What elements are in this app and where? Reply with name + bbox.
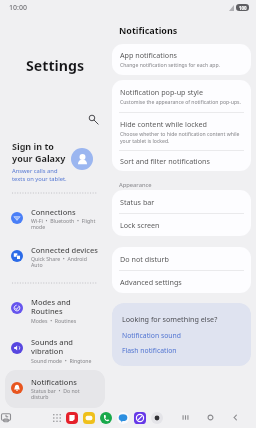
button[interactable]: Status bar xyxy=(112,190,251,213)
staticText: 100 xyxy=(239,5,247,11)
staticText: Advanced settings xyxy=(120,277,182,287)
staticText: Modes • Routines xyxy=(31,317,77,324)
button[interactable]: App 3 xyxy=(117,412,129,424)
staticText: Connected devices xyxy=(31,245,98,255)
staticText: Connections xyxy=(31,207,76,217)
button[interactable]: Hide content while locked xyxy=(112,113,251,150)
staticText: Settings xyxy=(26,56,85,75)
staticText: Status bar • Do not disturb xyxy=(31,387,80,401)
button[interactable]: Connections xyxy=(5,200,105,238)
button[interactable]: Sounds and vibration xyxy=(5,330,105,371)
button[interactable]: App 0 xyxy=(66,412,78,424)
button[interactable]: Sort and filter notifications xyxy=(112,151,251,171)
button[interactable]: Connected devices xyxy=(5,238,105,276)
button[interactable]: Lock screen xyxy=(112,214,251,236)
staticText: Sounds and vibration xyxy=(31,337,73,357)
staticText: Do not disturb xyxy=(120,254,169,264)
staticText: texts on your tablet. xyxy=(12,175,67,182)
staticText: Change notification settings for each ap… xyxy=(120,62,220,69)
button[interactable]: Show desktop xyxy=(1,413,11,422)
button[interactable]: App 4 xyxy=(134,412,146,424)
button[interactable]: App 5 xyxy=(151,412,163,424)
staticText: Notifications xyxy=(31,377,77,387)
staticText: Sort and filter notifications xyxy=(120,156,210,166)
staticText: Sign in to xyxy=(12,140,54,152)
button[interactable]: Search xyxy=(86,112,99,125)
staticText: 10:00 xyxy=(9,3,27,13)
staticText: Quick Share • Android Auto xyxy=(31,255,87,269)
staticText: Wi-Fi • Bluetooth • Flight mode xyxy=(31,217,96,231)
staticText: Looking for something else? xyxy=(122,314,218,324)
button[interactable]: Home xyxy=(205,412,216,423)
staticText: Customise the appearance of notification… xyxy=(120,99,241,106)
button[interactable]: Advanced settings xyxy=(112,271,251,293)
button[interactable]: App 1 xyxy=(83,412,95,424)
button[interactable]: Flash notification xyxy=(122,346,177,355)
staticText: Hide content while locked xyxy=(120,119,208,129)
button[interactable]: Notifications xyxy=(5,370,105,408)
button[interactable]: Apps xyxy=(53,414,61,422)
button[interactable]: Do not disturb xyxy=(112,247,251,270)
staticText: Appearance xyxy=(119,181,152,189)
button[interactable]: App notifications xyxy=(112,44,251,75)
button[interactable]: Notification pop-up style xyxy=(112,80,251,112)
button[interactable]: Back xyxy=(230,412,241,423)
staticText: Answer calls and xyxy=(12,167,58,175)
button[interactable]: App 2 xyxy=(100,412,112,424)
staticText: your Galaxy xyxy=(12,152,66,164)
staticText: Sound mode • Ringtone xyxy=(31,357,92,364)
button[interactable]: Recents xyxy=(180,412,191,423)
button[interactable]: Sign in to xyxy=(0,138,110,180)
staticText: Lock screen xyxy=(120,220,160,230)
staticText: Choose whether to hide notification cont… xyxy=(120,131,240,145)
staticText: App notifications xyxy=(120,50,178,60)
staticText: Notification pop-up style xyxy=(120,87,204,97)
button[interactable]: Modes and Routines xyxy=(5,290,105,331)
staticText: Modes and Routines xyxy=(31,297,71,317)
staticText: Status bar xyxy=(120,197,155,207)
staticText: Notifications xyxy=(119,24,178,36)
button[interactable]: Notification sound xyxy=(122,331,181,340)
